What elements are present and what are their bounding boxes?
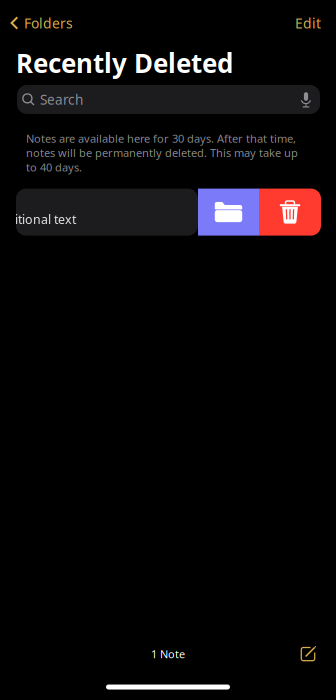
button[interactable]: Delete [259,189,321,236]
staticText: Edit [295,14,321,32]
staticText: 1 Note [151,647,185,661]
staticText: Recently Deleted [16,45,233,81]
button[interactable]: Edit [280,0,336,46]
button[interactable]: Folders [0,0,83,46]
button[interactable]: itional text [16,189,198,236]
staticText: Notes are available here for 30 days. Af… [26,131,298,175]
button[interactable]: New Note [290,634,326,674]
staticText: Search [40,90,83,109]
staticText: Folders [24,14,73,32]
button[interactable]: Move to folder [198,189,259,236]
staticText: itional text [15,211,76,228]
